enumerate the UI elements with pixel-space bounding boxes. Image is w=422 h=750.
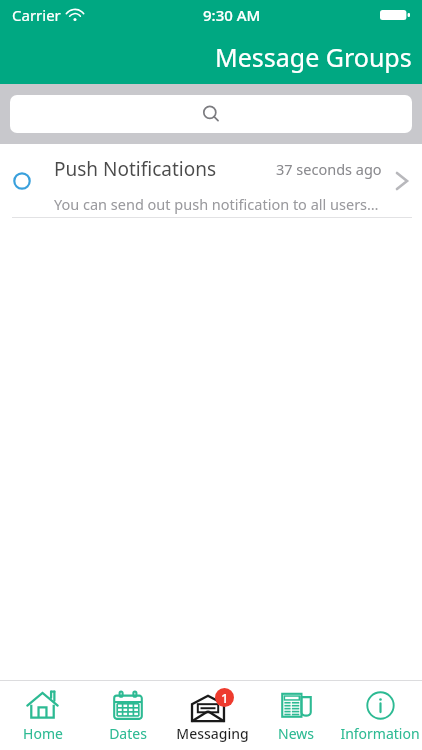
staticText: Information bbox=[340, 724, 420, 743]
button[interactable]: News bbox=[254, 681, 338, 750]
button[interactable]: 1 bbox=[170, 681, 254, 750]
staticText: News bbox=[278, 724, 314, 743]
button[interactable]: Dates bbox=[85, 681, 170, 750]
button[interactable]: Search bbox=[10, 95, 412, 133]
staticText: Push Notifications bbox=[54, 156, 217, 182]
staticText: 9:30 AM bbox=[203, 5, 261, 25]
button[interactable]: Home bbox=[0, 681, 85, 750]
staticText: 37 seconds ago bbox=[276, 159, 382, 179]
staticText: Carrier bbox=[12, 5, 61, 25]
button[interactable]: Information bbox=[338, 681, 422, 750]
staticText: You can send out push notification to al… bbox=[54, 194, 379, 214]
button[interactable]: Push Notifications bbox=[0, 144, 422, 218]
staticText: Dates bbox=[109, 724, 147, 743]
staticText: Messaging bbox=[176, 724, 249, 743]
staticText: Home bbox=[23, 724, 63, 743]
staticText: 1 bbox=[221, 689, 229, 707]
staticText: Message Groups bbox=[215, 40, 412, 74]
